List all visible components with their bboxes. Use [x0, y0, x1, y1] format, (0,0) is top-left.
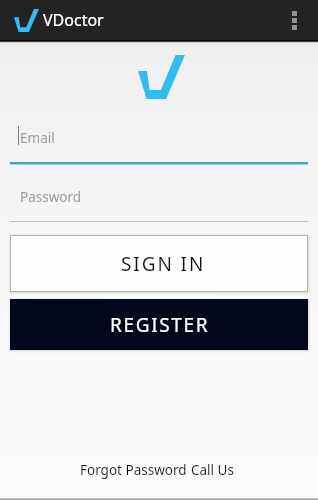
- button[interactable]: More options: [281, 1, 310, 39]
- button[interactable]: Forgot Password: [80, 461, 187, 479]
- staticText: REGISTER: [110, 312, 210, 338]
- button[interactable]: REGISTER: [10, 299, 308, 350]
- staticText: Email: [20, 129, 55, 147]
- button[interactable]: SIGN IN: [10, 235, 308, 292]
- staticText: VDoctor: [43, 9, 104, 31]
- staticText: Password: [20, 188, 82, 206]
- staticText: SIGN IN: [121, 251, 206, 277]
- button[interactable]: Call Us: [191, 461, 234, 479]
